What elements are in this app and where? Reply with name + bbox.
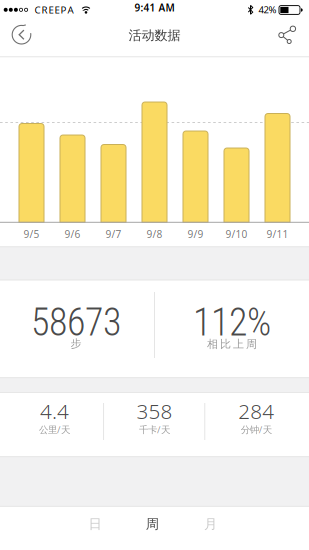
- button[interactable]: Share: [273, 20, 301, 48]
- staticText: 步: [70, 337, 81, 350]
- staticText: 9/8: [146, 227, 162, 241]
- staticText: 112%: [193, 300, 271, 345]
- button[interactable]: Back: [7, 21, 35, 49]
- staticText: 9/11: [266, 227, 288, 241]
- staticText: 相 比 上 周: [207, 337, 257, 351]
- staticText: 358: [137, 397, 173, 425]
- staticText: 活动数据: [128, 27, 180, 44]
- staticText: 周: [146, 516, 159, 532]
- button[interactable]: 日: [75, 506, 115, 542]
- staticText: 9/10: [225, 227, 247, 241]
- button[interactable]: 月: [190, 506, 230, 542]
- staticText: 9:41 AM: [134, 1, 174, 14]
- staticText: 月: [204, 516, 217, 532]
- staticText: 日: [88, 516, 101, 532]
- staticText: 千卡/天: [139, 423, 170, 436]
- staticText: 公里/天: [39, 423, 70, 436]
- staticText: 4.4: [40, 397, 69, 425]
- staticText: 284: [238, 397, 274, 425]
- staticText: 42%: [258, 3, 276, 16]
- staticText: 9/7: [105, 227, 121, 241]
- staticText: C R E E P A: [34, 3, 73, 16]
- staticText: 9/6: [64, 227, 80, 241]
- staticText: 58673: [31, 300, 121, 345]
- button[interactable]: 周: [132, 506, 172, 542]
- staticText: 9/9: [187, 227, 203, 241]
- staticText: 9/5: [23, 227, 39, 241]
- staticText: 分钟/天: [241, 423, 272, 436]
